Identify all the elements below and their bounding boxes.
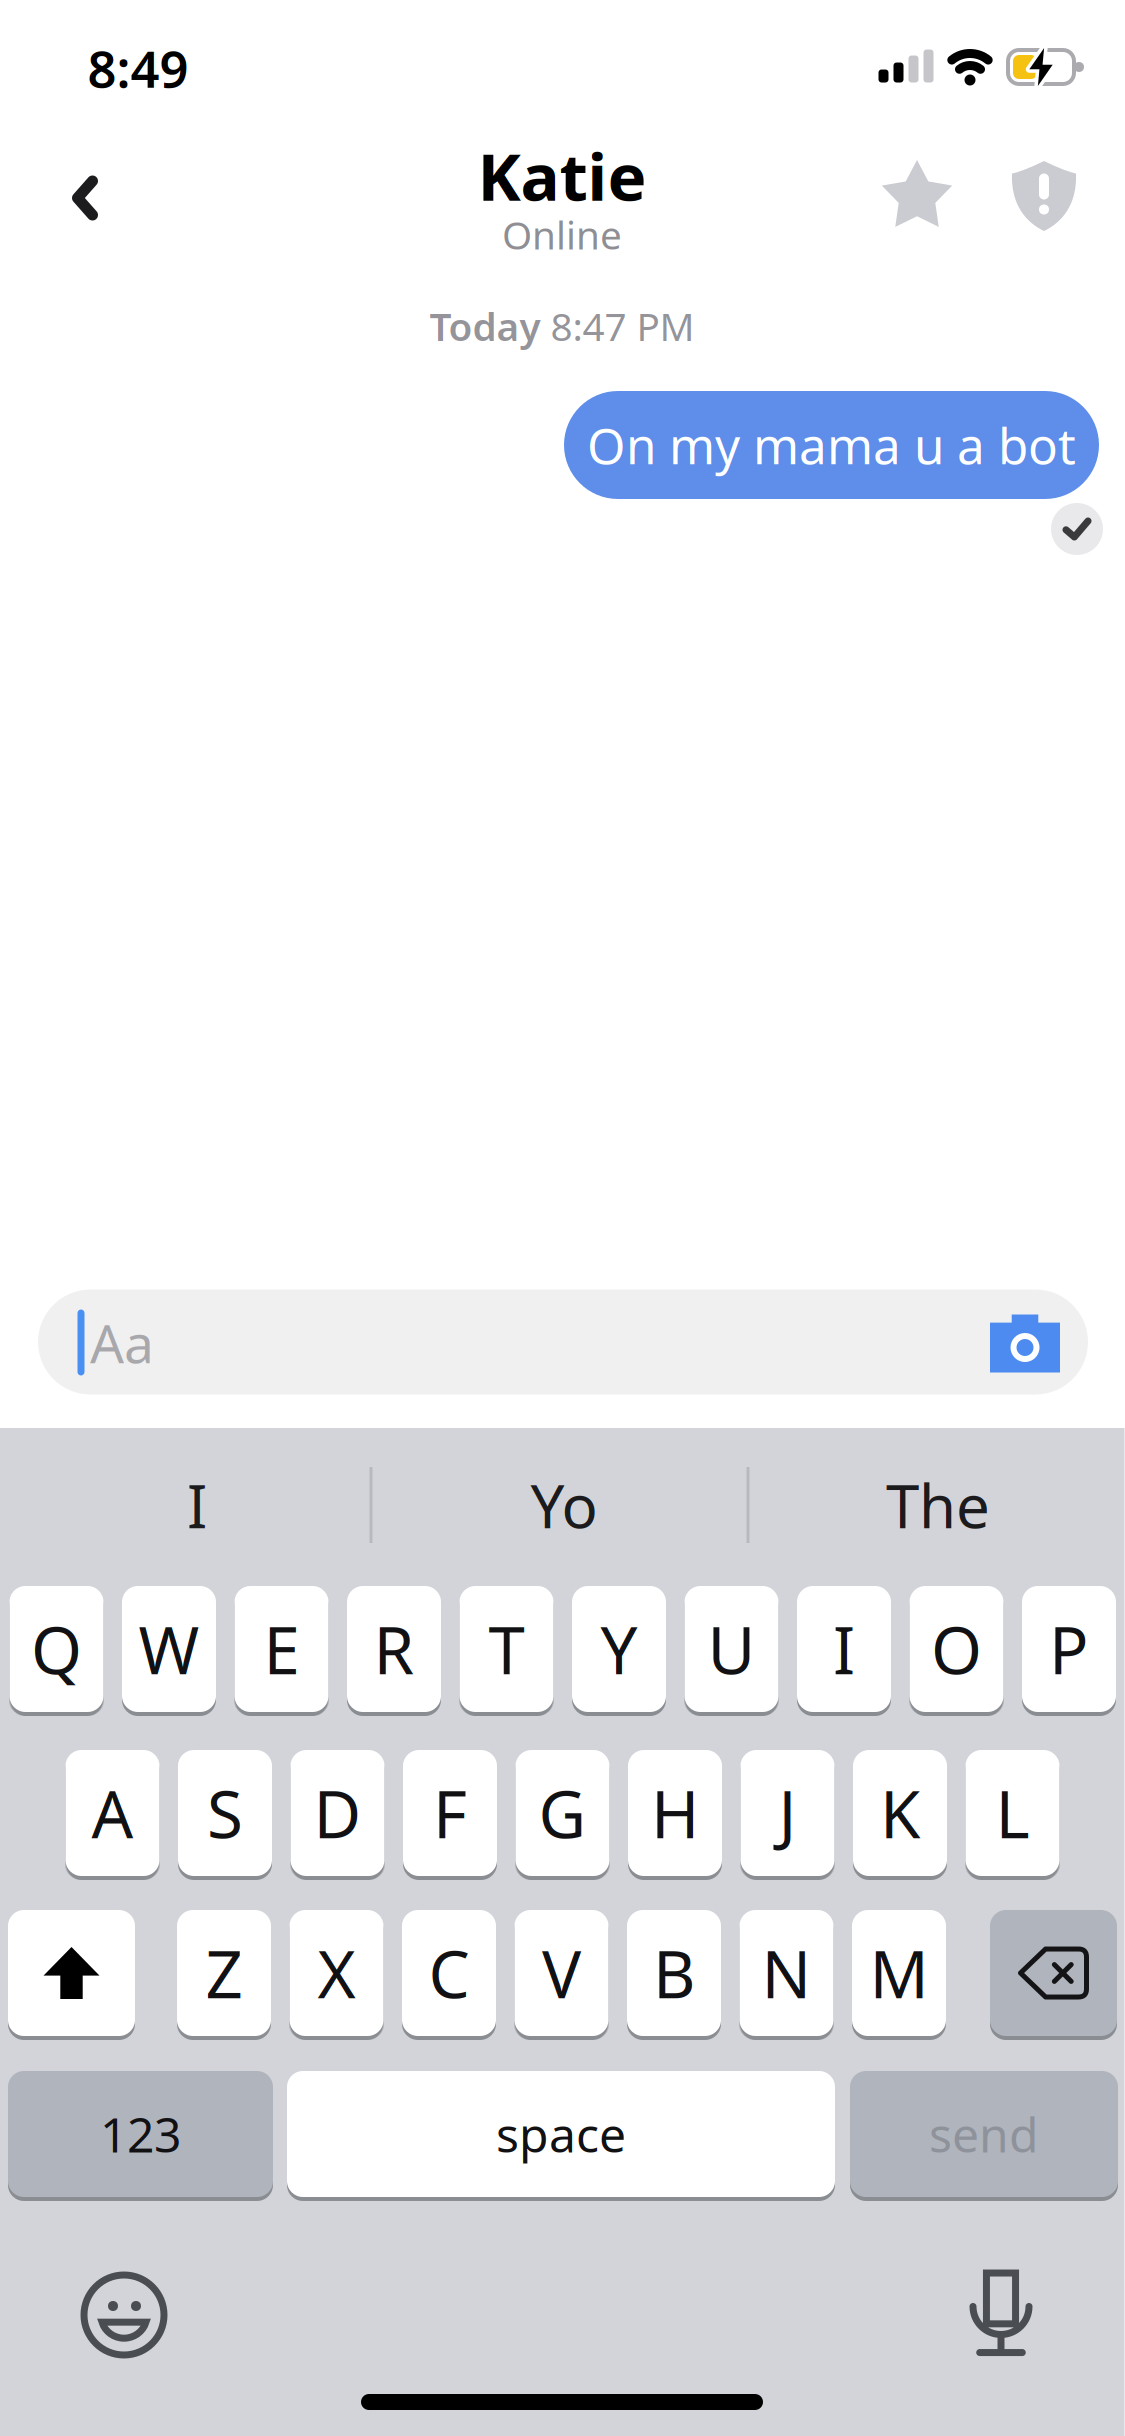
staticText: P	[1049, 1606, 1089, 1692]
button[interactable]: 123	[8, 2071, 273, 2197]
staticText: Z	[205, 1930, 242, 2016]
button[interactable]: E	[234, 1586, 328, 1712]
staticText: D	[313, 1770, 361, 1856]
staticText: L	[995, 1770, 1029, 1856]
button[interactable]: P	[1022, 1586, 1116, 1712]
staticText: J	[778, 1770, 796, 1856]
staticText: 8:47 PM	[550, 300, 694, 352]
staticText: O	[931, 1606, 982, 1692]
button[interactable]: B	[627, 1910, 721, 2036]
staticText: 8:49	[87, 34, 188, 102]
button[interactable]	[8, 1910, 135, 2036]
button[interactable]: Yo	[414, 1455, 714, 1555]
staticText: space	[496, 2102, 626, 2166]
button[interactable]: M	[852, 1910, 946, 2036]
staticText: Q	[31, 1606, 82, 1692]
staticText: B	[653, 1930, 695, 2016]
staticText: send	[929, 2102, 1039, 2166]
button[interactable]: K	[853, 1750, 947, 1876]
button[interactable]: X	[289, 1910, 383, 2036]
button[interactable]: A	[65, 1750, 159, 1876]
button[interactable]: Katie	[477, 132, 646, 272]
button[interactable]: V	[514, 1910, 608, 2036]
staticText: On my mama u a bot	[587, 412, 1076, 478]
staticText: X	[317, 1930, 355, 2016]
staticText: Yo	[530, 1465, 597, 1545]
staticText: Y	[600, 1606, 637, 1692]
staticText: T	[488, 1606, 524, 1692]
staticText: A	[91, 1770, 133, 1856]
button[interactable]: R	[347, 1586, 441, 1712]
button[interactable]: D	[290, 1750, 384, 1876]
button[interactable]: J	[740, 1750, 834, 1876]
button[interactable]: W	[122, 1586, 216, 1712]
staticText: K	[880, 1770, 920, 1856]
button[interactable]: Y	[572, 1586, 666, 1712]
staticText: S	[207, 1770, 243, 1856]
button[interactable]: I	[47, 1455, 347, 1555]
button[interactable]: On my mama u a bot	[564, 391, 1099, 499]
button[interactable]: Q	[9, 1586, 103, 1712]
button[interactable]	[1012, 161, 1076, 231]
button[interactable]: S	[178, 1750, 272, 1876]
button[interactable]: F	[403, 1750, 497, 1876]
staticText: I	[833, 1606, 855, 1692]
button[interactable]: send	[850, 2071, 1118, 2197]
staticText: Katie	[477, 132, 646, 219]
staticText: N	[761, 1930, 811, 2016]
staticText: M	[869, 1930, 928, 2016]
button[interactable]: G	[515, 1750, 609, 1876]
staticText: C	[428, 1930, 469, 2016]
button[interactable]: Aa	[38, 1289, 1088, 1394]
button[interactable]: I	[797, 1586, 891, 1712]
button[interactable]: space	[287, 2071, 835, 2197]
button[interactable]	[990, 1910, 1117, 2036]
staticText: V	[542, 1930, 581, 2016]
button[interactable]	[57, 161, 112, 235]
staticText: E	[263, 1606, 299, 1692]
button[interactable]: H	[628, 1750, 722, 1876]
button[interactable]	[973, 2273, 1029, 2355]
button[interactable]	[84, 2275, 164, 2355]
staticText: W	[138, 1606, 199, 1692]
staticText: G	[538, 1770, 586, 1856]
button[interactable]: The	[788, 1455, 1088, 1555]
staticText: U	[707, 1606, 755, 1692]
button[interactable]: Z	[177, 1910, 271, 2036]
staticText: H	[651, 1770, 699, 1856]
button[interactable]: U	[684, 1586, 778, 1712]
button[interactable]: O	[909, 1586, 1003, 1712]
staticText: Online	[502, 209, 622, 260]
button[interactable]: C	[402, 1910, 496, 2036]
button[interactable]: T	[459, 1586, 553, 1712]
staticText: 123	[100, 2102, 181, 2166]
button[interactable]: N	[739, 1910, 833, 2036]
staticText: R	[373, 1606, 414, 1692]
staticText: Aa	[90, 1307, 154, 1378]
staticText: Today	[429, 300, 540, 352]
staticText: I	[187, 1465, 207, 1545]
button[interactable]	[879, 160, 955, 234]
staticText: F	[433, 1770, 467, 1856]
button[interactable]: L	[965, 1750, 1059, 1876]
staticText: The	[886, 1465, 990, 1545]
